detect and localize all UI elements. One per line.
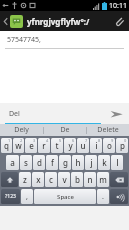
staticText: m: [99, 174, 107, 185]
staticText: f: [51, 157, 54, 168]
button[interactable]: Navigate up: [0, 15, 24, 28]
button[interactable]: p: [116, 138, 128, 153]
staticText: 3: [33, 138, 36, 143]
staticText: 6: [72, 138, 75, 143]
staticText: q: [4, 140, 9, 151]
button[interactable]: Dely: [0, 124, 43, 136]
staticText: ?123: [5, 193, 16, 200]
staticText: Space: [57, 193, 74, 201]
button[interactable]: ?123: [1, 189, 20, 204]
button[interactable]: m: [97, 172, 109, 187]
staticText: 4: [46, 138, 49, 143]
staticText: 5: [59, 138, 62, 143]
staticText: 10:11: [109, 1, 127, 11]
staticText: d: [37, 157, 42, 168]
button[interactable]: d: [33, 155, 45, 170]
staticText: ,: [26, 192, 28, 202]
staticText: n: [87, 174, 93, 185]
button[interactable]: q: [1, 138, 12, 153]
button[interactable]: Delete: [87, 124, 129, 136]
staticText: 57547745,: [7, 35, 41, 45]
button[interactable]: e: [25, 138, 37, 153]
button[interactable]: u: [77, 138, 89, 153]
button[interactable]: w: [13, 138, 24, 153]
staticText: Delete: [97, 125, 119, 135]
staticText: l: [116, 157, 119, 168]
staticText: z: [23, 174, 27, 185]
button[interactable]: y: [64, 138, 76, 153]
staticText: h: [75, 157, 81, 168]
button[interactable]: n: [84, 172, 96, 187]
button[interactable]: b: [71, 172, 83, 187]
staticText: 9: [111, 138, 114, 143]
button[interactable]: i: [90, 138, 102, 153]
staticText: i: [95, 140, 98, 151]
button[interactable]: a: [6, 155, 19, 170]
staticText: v: [62, 174, 67, 185]
staticText: p: [120, 140, 125, 151]
staticText: s: [24, 157, 28, 168]
button[interactable]: z: [19, 172, 31, 187]
staticText: x: [36, 174, 41, 185]
button[interactable]: h: [72, 155, 84, 170]
button[interactable]: c: [45, 172, 57, 187]
staticText: yfnrgjvgflyfw°:/: [27, 16, 109, 27]
button[interactable]: l: [111, 155, 123, 170]
staticText: 7: [85, 138, 88, 143]
staticText: t: [55, 140, 59, 151]
staticText: c: [49, 174, 53, 185]
staticText: u: [80, 140, 86, 151]
button[interactable]: key: [110, 172, 128, 187]
staticText: .: [102, 192, 104, 202]
staticText: 0: [124, 138, 127, 143]
button[interactable]: k: [98, 155, 110, 170]
staticText: De: [60, 125, 70, 135]
button[interactable]: De: [44, 124, 86, 136]
button[interactable]: x: [32, 172, 44, 187]
button[interactable]: Del: [0, 103, 103, 124]
button[interactable]: v: [58, 172, 70, 187]
staticText: r: [42, 140, 46, 151]
button[interactable]: r: [38, 138, 50, 153]
button[interactable]: ,: [21, 189, 33, 204]
staticText: j: [90, 157, 93, 168]
button[interactable]: key: [1, 172, 18, 187]
staticText: o: [107, 140, 112, 151]
staticText: w: [15, 140, 22, 151]
staticText: Del: [9, 109, 20, 119]
button[interactable]: g: [59, 155, 71, 170]
staticText: k: [102, 157, 107, 168]
button[interactable]: Attach: [109, 11, 129, 31]
staticText: g: [63, 157, 68, 168]
staticText: a: [10, 157, 15, 168]
staticText: y: [68, 140, 73, 151]
button[interactable]: 57547745,: [0, 31, 129, 48]
button[interactable]: o: [103, 138, 115, 153]
button[interactable]: key: [110, 189, 128, 204]
staticText: b: [75, 174, 80, 185]
staticText: 2: [20, 138, 23, 143]
staticText: 1: [8, 138, 11, 143]
button[interactable]: f: [46, 155, 58, 170]
button[interactable]: Send: [103, 103, 129, 124]
staticText: e: [29, 140, 34, 151]
button[interactable]: Space: [34, 189, 96, 204]
button[interactable]: .: [97, 189, 109, 204]
button[interactable]: j: [85, 155, 97, 170]
button[interactable]: t: [51, 138, 63, 153]
staticText: Dely: [14, 125, 29, 135]
button[interactable]: s: [20, 155, 32, 170]
staticText: 8: [98, 138, 101, 143]
